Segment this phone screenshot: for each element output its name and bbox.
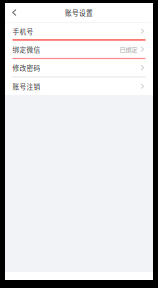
staticText: 手机号 [12, 26, 33, 36]
button[interactable]: 手机号 [5, 23, 153, 39]
staticText: 已绑定 [119, 45, 137, 54]
staticText: 绑定微信 [12, 44, 40, 54]
button[interactable]: 账号注销 [5, 78, 153, 95]
button[interactable]: 修改密码 [5, 59, 153, 76]
button[interactable]: Back [5, 3, 24, 22]
button[interactable]: 绑定微信 [5, 41, 153, 58]
staticText: 修改密码 [12, 63, 40, 73]
staticText: 账号注销 [12, 81, 40, 91]
staticText: 账号设置 [65, 8, 93, 18]
